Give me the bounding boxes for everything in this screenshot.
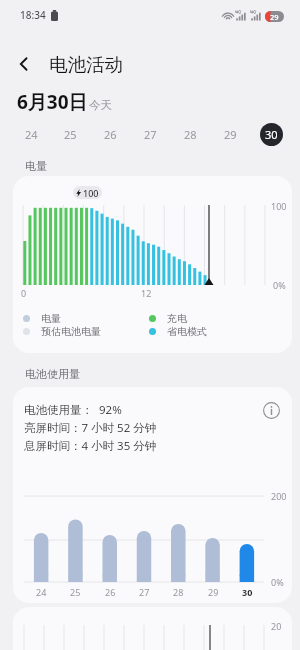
button[interactable]: 24 [15,118,47,150]
staticText: 预估电池电量 [41,325,101,338]
staticText: 12 [141,287,152,299]
button[interactable]: Back [8,48,40,80]
staticText: 24 [36,586,47,598]
staticText: 18:34 [20,8,46,22]
button[interactable]: 28 [174,118,206,150]
staticText: 亮屏时间：7 小时 52 分钟 [24,420,157,436]
staticText: 25 [64,127,77,142]
staticText: 息屏时间：4 小时 35 分钟 [24,438,157,454]
staticText: 30 [242,586,253,598]
staticText: 0 [21,287,27,299]
staticText: 0% [271,576,284,588]
staticText: 100 [83,187,99,199]
button[interactable]: 30 [255,118,287,150]
staticText: 省电模式 [167,325,207,338]
staticText: 200 [271,490,287,502]
staticText: 27 [144,127,157,142]
staticText: 27 [139,586,150,598]
button[interactable]: 26 [94,118,126,150]
staticText: 25 [70,586,81,598]
button[interactable]: 29 [214,118,246,150]
staticText: 0% [273,279,286,291]
staticText: 今天 [89,98,112,112]
staticText: 29 [270,12,279,22]
button[interactable]: Info [259,398,283,422]
staticText: 28 [184,127,197,142]
staticText: 26 [104,127,117,142]
staticText: 6月30日 [17,89,88,115]
staticText: 电池活动 [49,53,123,76]
staticText: 100 [271,200,287,212]
button[interactable]: 25 [54,118,86,150]
staticText: 30 [265,127,278,142]
staticText: 28 [173,586,184,598]
staticText: 电量 [41,312,61,325]
staticText: 29 [224,127,237,142]
staticText: 充电 [167,312,187,325]
button[interactable]: 27 [134,118,166,150]
staticText: 24 [25,127,38,142]
staticText: 26 [105,586,116,598]
staticText: 20 [271,620,282,632]
staticText: 电池使用量 [25,367,80,381]
staticText: 电量 [25,159,47,173]
staticText: 29 [208,586,219,598]
staticText: 电池使用量： 92% [24,402,122,418]
